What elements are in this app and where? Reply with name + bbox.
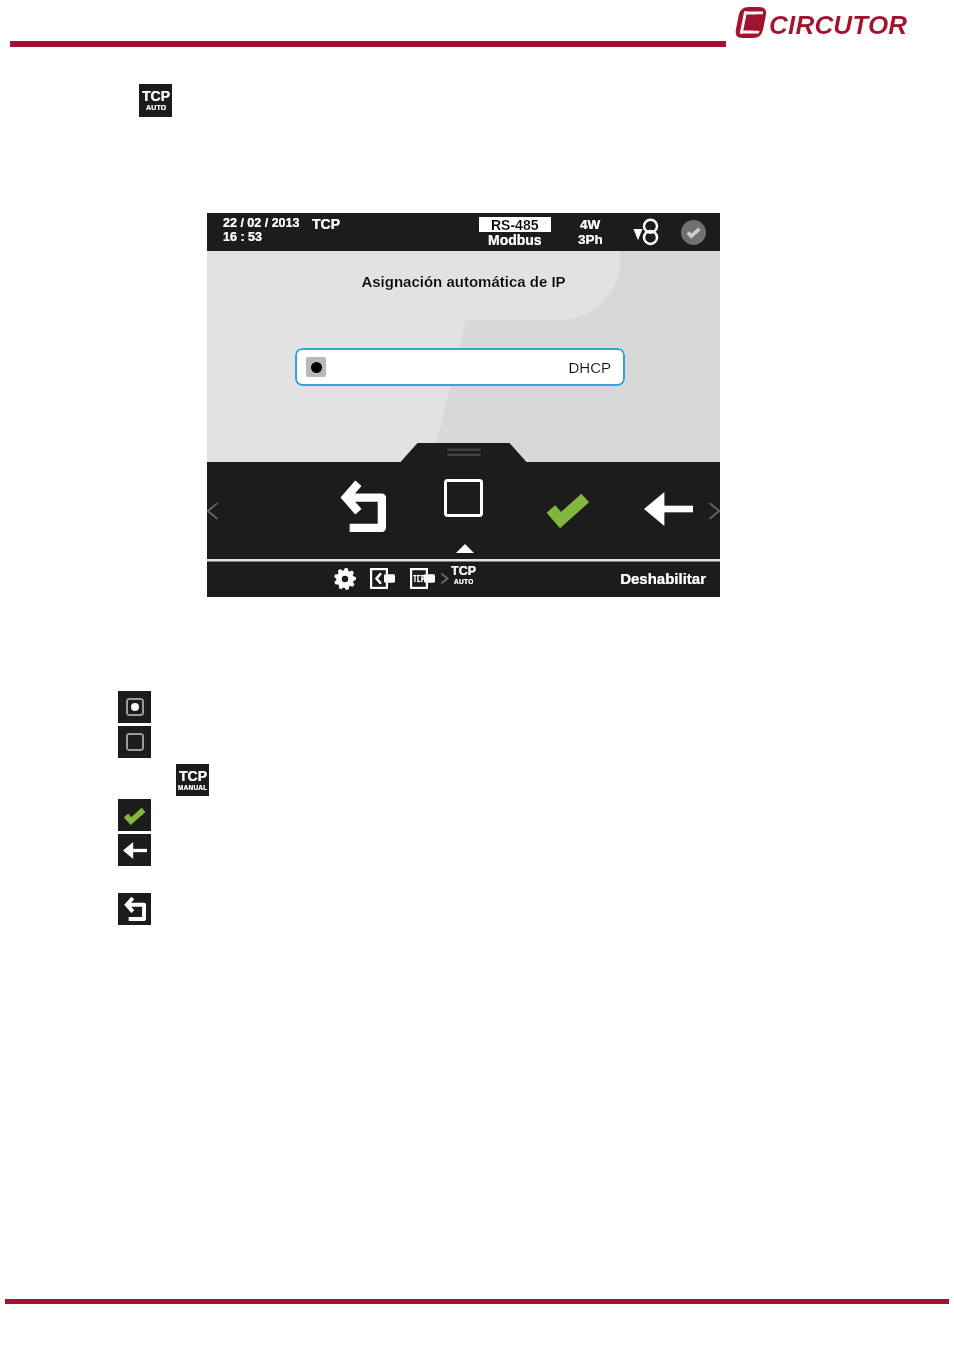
staticText: DHCP bbox=[295, 359, 611, 376]
staticText: 16 : 53 bbox=[223, 230, 262, 244]
staticText: Deshabilitar bbox=[207, 570, 706, 587]
staticText: 22 / 02 / 2013 bbox=[223, 216, 300, 230]
staticText: 4W bbox=[580, 217, 601, 232]
button[interactable]: Confirm bbox=[512, 463, 604, 549]
staticText: AUTO bbox=[146, 104, 167, 112]
staticText: MANUAL bbox=[178, 784, 208, 791]
staticText: RS-485 bbox=[491, 217, 539, 232]
staticText: 3Ph bbox=[578, 232, 603, 247]
staticText: TCP bbox=[179, 768, 207, 784]
staticText: TCP bbox=[142, 88, 170, 104]
staticText: Modbus bbox=[488, 232, 542, 248]
staticText: CIRCUTOR bbox=[769, 10, 908, 39]
button[interactable]: Undo bbox=[317, 463, 409, 549]
button[interactable]: Back bbox=[611, 463, 703, 549]
staticText: TCP bbox=[451, 564, 476, 578]
staticText: AUTO bbox=[454, 578, 474, 585]
button[interactable]: Stop bbox=[409, 463, 501, 549]
staticText: Asignación automática de IP bbox=[207, 273, 720, 290]
staticText: TCP bbox=[312, 216, 340, 232]
button[interactable]: DHCP bbox=[295, 348, 625, 386]
